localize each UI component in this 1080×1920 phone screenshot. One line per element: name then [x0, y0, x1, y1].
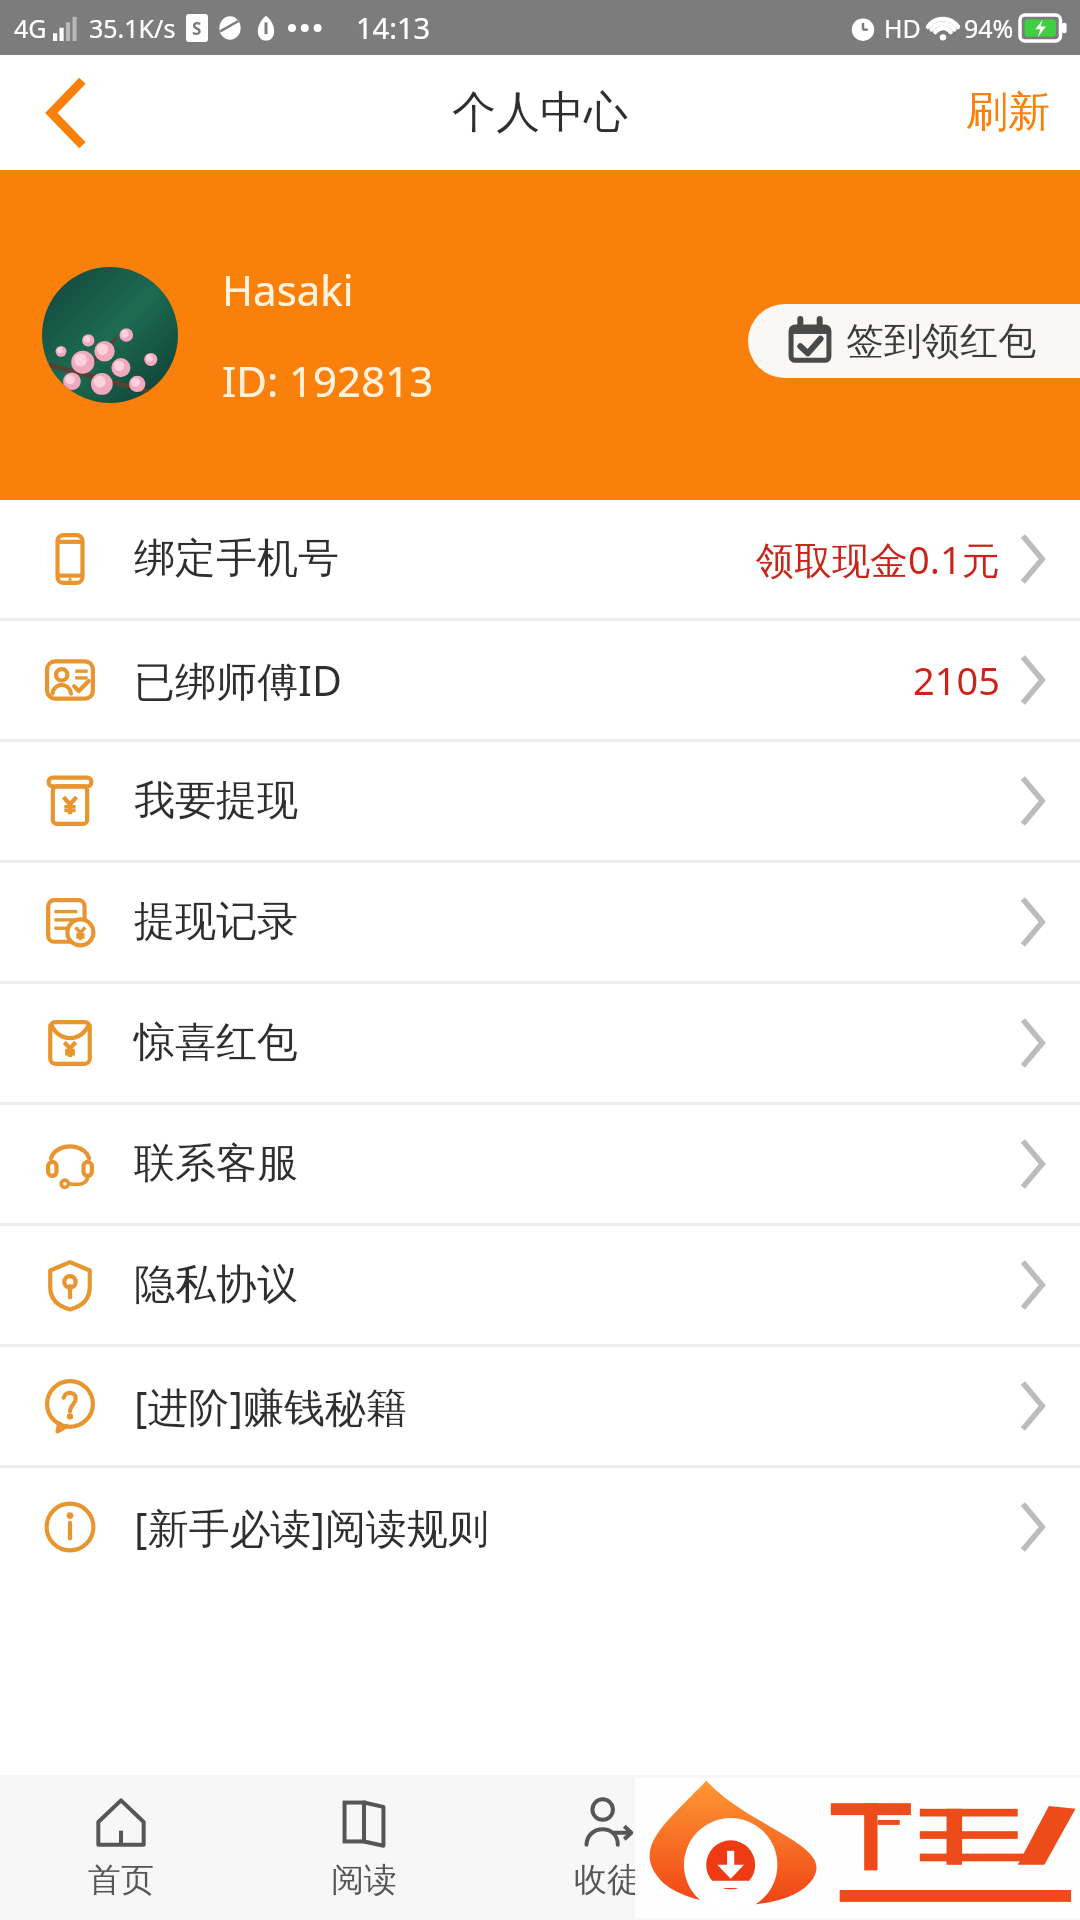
- staticText: 绑定手机号: [134, 533, 339, 585]
- staticText: 签到领红包: [846, 317, 1036, 365]
- staticText: 提现记录: [134, 896, 298, 948]
- button[interactable]: Back: [0, 55, 130, 170]
- button[interactable]: 提现记录: [0, 863, 1080, 981]
- button[interactable]: 绑定手机号: [0, 500, 1080, 618]
- button[interactable]: 惊喜红包: [0, 984, 1080, 1102]
- button[interactable]: 我要提现: [0, 742, 1080, 860]
- button[interactable]: 刷新: [936, 55, 1080, 170]
- staticText: 14:13: [356, 8, 431, 47]
- button[interactable]: 隐私协议: [0, 1226, 1080, 1344]
- button[interactable]: 签到领红包: [748, 304, 1080, 378]
- staticText: 个人中心: [452, 85, 628, 140]
- staticText: 领取现金0.1元: [756, 533, 1000, 585]
- staticText: 94%: [964, 11, 1014, 45]
- button[interactable]: 联系客服: [0, 1105, 1080, 1223]
- button[interactable]: 收徒: [485, 1775, 728, 1920]
- staticText: Hasaki: [222, 261, 354, 318]
- staticText: 首页: [88, 1859, 154, 1901]
- staticText: 我要提现: [134, 775, 298, 827]
- staticText: [新手必读]阅读规则: [134, 1499, 489, 1555]
- staticText: 已绑师傅ID: [134, 652, 342, 708]
- button[interactable]: 首页: [0, 1775, 242, 1920]
- staticText: 35.1K/s: [89, 11, 176, 45]
- staticText: 收徒: [574, 1859, 640, 1901]
- staticText: 阅读: [331, 1859, 397, 1901]
- button[interactable]: 已绑师傅ID: [0, 621, 1080, 739]
- staticText: 刷新: [966, 86, 1050, 139]
- button[interactable]: [新手必读]阅读规则: [0, 1468, 1080, 1586]
- button[interactable]: 阅读: [242, 1775, 485, 1920]
- staticText: 2105: [913, 654, 1000, 706]
- staticText: HD: [884, 11, 921, 45]
- staticText: 联系客服: [134, 1138, 298, 1190]
- staticText: 惊喜红包: [134, 1017, 298, 1069]
- staticText: ID: 192813: [222, 352, 434, 409]
- staticText: S: [192, 17, 202, 40]
- button[interactable]: [进阶]赚钱秘籍: [0, 1347, 1080, 1465]
- staticText: [进阶]赚钱秘籍: [134, 1378, 407, 1434]
- staticText: 4G: [14, 11, 47, 45]
- staticText: 隐私协议: [134, 1259, 298, 1311]
